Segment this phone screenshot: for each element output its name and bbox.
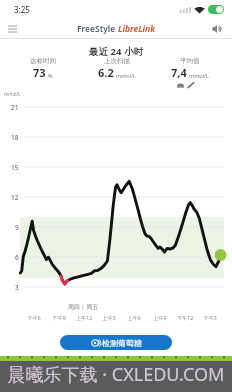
button[interactable]: 上次扫描 <box>80 57 153 80</box>
staticText: 周四 | 周五 <box>63 303 103 311</box>
staticText: 达标时间 <box>30 57 56 65</box>
button[interactable]: Menu <box>2 19 22 39</box>
staticText: 上次扫描 <box>104 57 130 65</box>
staticText: 上午12 <box>70 314 98 321</box>
staticText: 下午6 <box>20 314 48 321</box>
staticText: 9 <box>15 223 19 232</box>
button[interactable]: 达标时间 <box>6 57 80 80</box>
staticText: 6 <box>15 253 19 262</box>
staticText: 上午6 <box>120 314 148 321</box>
staticText: 21 <box>11 103 19 112</box>
staticText: 12 <box>11 193 19 202</box>
staticText: FreeStyle <box>77 23 118 35</box>
staticText: 平均值 <box>180 57 200 65</box>
staticText: 3:25 <box>14 4 30 15</box>
staticText: 上午3 <box>95 314 123 321</box>
staticText: 检测葡萄糖 <box>102 338 142 348</box>
button[interactable]: 平均值 <box>153 57 226 88</box>
staticText: mmol/L <box>116 72 136 79</box>
staticText: 18 <box>11 133 19 142</box>
staticText: 最近 24 小时 <box>0 45 232 58</box>
staticText: % <box>48 72 53 79</box>
staticText: 下午12 <box>171 314 199 321</box>
staticText: 6.2 <box>98 65 114 80</box>
staticText: 73 <box>33 65 46 80</box>
staticText: 下午9 <box>45 314 73 321</box>
staticText: 3 <box>15 283 19 292</box>
button[interactable]: 检测葡萄糖 <box>60 335 172 350</box>
staticText: 晨曦乐下载 · CXLEDU.COM <box>0 362 232 387</box>
staticText: mmol/L <box>189 72 209 79</box>
staticText: mmol/L <box>4 91 21 97</box>
button[interactable]: Alarms <box>208 20 226 38</box>
staticText: 上午9 <box>146 314 174 321</box>
staticText: LibreLink <box>118 23 156 35</box>
staticText: 15 <box>11 163 19 172</box>
staticText: 下午3 <box>196 314 224 321</box>
staticText: 7,4 <box>171 65 187 80</box>
